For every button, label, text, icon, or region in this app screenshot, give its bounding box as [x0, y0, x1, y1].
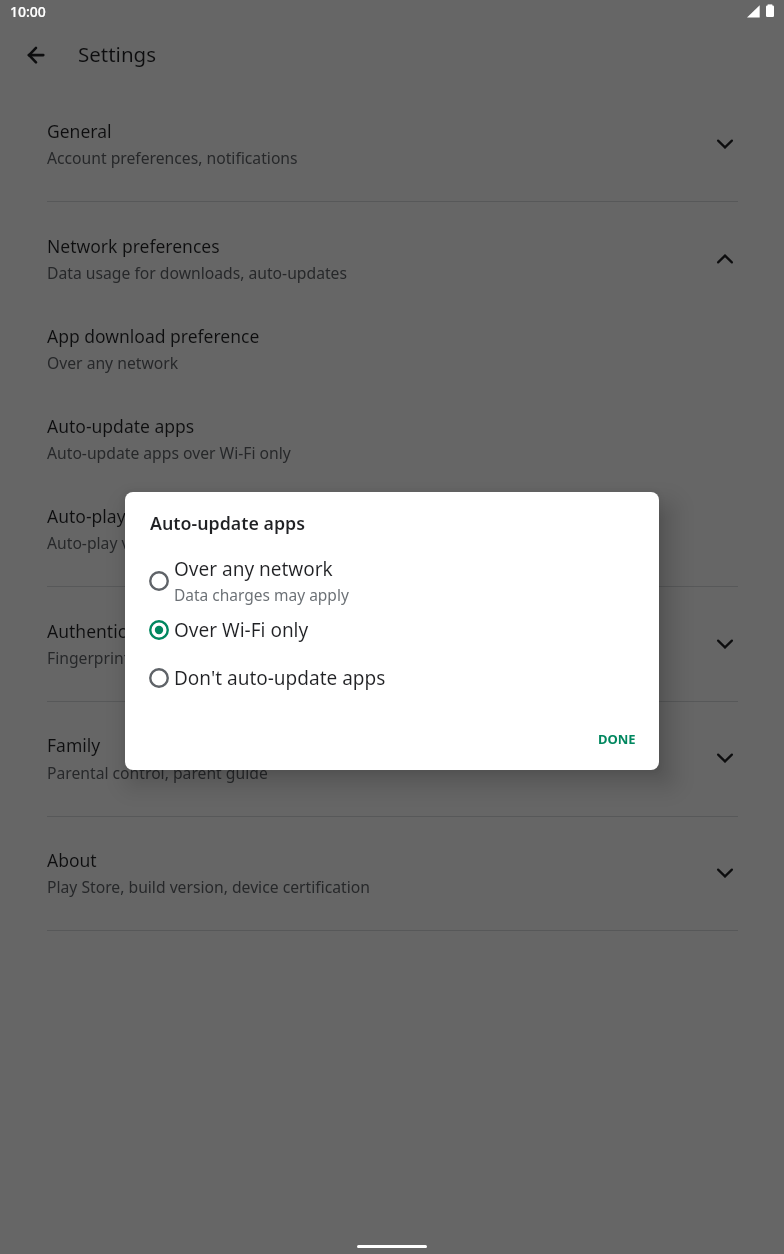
button[interactable] [0, 602, 784, 676]
button[interactable] [0, 217, 784, 291]
button[interactable] [0, 102, 784, 176]
button[interactable]: DONE [582, 719, 652, 759]
staticText: Data usage for downloads, auto-updates [47, 262, 347, 283]
staticText: Authentication [47, 619, 169, 643]
button[interactable]: Back [11, 30, 59, 78]
staticText: Account preferences, notifications [47, 147, 298, 168]
staticText: Family [47, 733, 101, 757]
staticText: Auto-play videos over Wi-Fi only [47, 532, 281, 553]
staticText: Auto-play videos [47, 504, 184, 528]
button[interactable] [0, 307, 784, 381]
staticText: Auto-update apps over Wi-Fi only [47, 442, 291, 463]
button[interactable] [125, 656, 659, 700]
staticText: DONE [598, 730, 636, 748]
staticText: About [47, 848, 97, 872]
staticText: Auto-update apps [47, 414, 195, 438]
staticText: Parental control, parent guide [47, 762, 268, 783]
staticText: Over any network [174, 556, 333, 582]
staticText: Auto-update apps [150, 511, 305, 535]
staticText: Fingerprint, purchase verification [47, 647, 292, 668]
staticText: General [47, 119, 112, 143]
staticText: Over any network [47, 352, 179, 373]
staticText: Data charges may apply [174, 584, 349, 605]
staticText: Settings [78, 40, 157, 68]
button[interactable] [0, 487, 784, 561]
button[interactable] [0, 831, 784, 905]
staticText: Over Wi-Fi only [174, 617, 309, 643]
button[interactable] [125, 557, 659, 607]
staticText: Play Store, build version, device certif… [47, 876, 370, 897]
staticText: 10:00 [10, 2, 46, 21]
button[interactable] [125, 609, 659, 653]
button[interactable] [0, 716, 784, 790]
staticText: App download preference [47, 324, 260, 348]
staticText: Don't auto-update apps [174, 665, 386, 691]
staticText: Network preferences [47, 234, 220, 258]
button[interactable] [0, 397, 784, 471]
